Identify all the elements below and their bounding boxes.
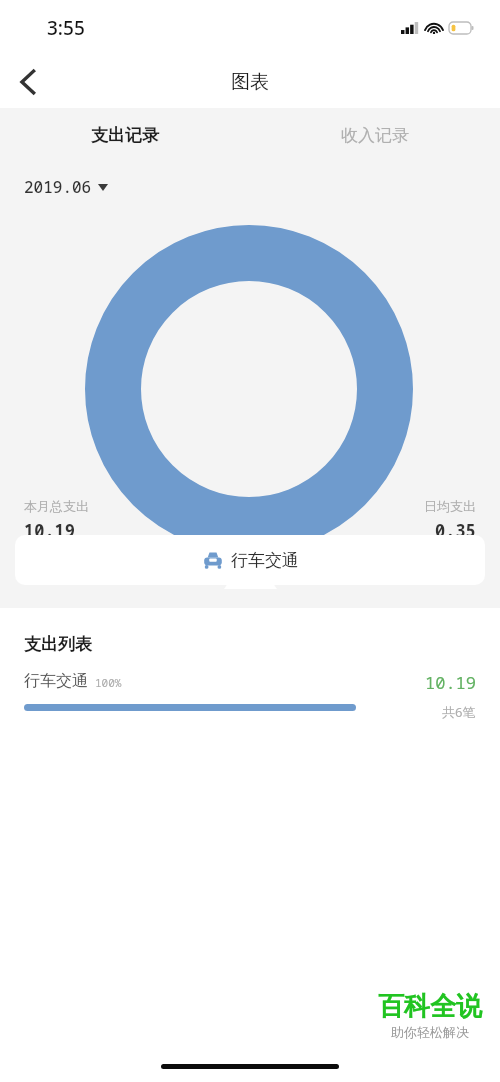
staticText: 收入记录 [341, 125, 409, 146]
staticText: 本月总支出 [24, 498, 89, 514]
staticText: 0.35 [435, 519, 476, 542]
staticText: 10.19 [425, 671, 476, 694]
staticText: 日均支出 [424, 498, 476, 514]
button[interactable]: 行车交通 [15, 535, 485, 585]
staticText: 100% [95, 675, 122, 690]
button[interactable]: 收入记录 [250, 108, 500, 162]
staticText: 行车交通 [24, 671, 88, 691]
button[interactable]: Back [0, 55, 56, 108]
staticText: 支出列表 [24, 634, 92, 655]
staticText: 百科全说 [378, 990, 482, 1023]
staticText: 行车交通 [231, 550, 299, 571]
button[interactable]: 支出记录 [0, 108, 250, 162]
staticText: 图表 [231, 70, 269, 94]
staticText: 支出记录 [91, 125, 159, 146]
staticText: 2019.06 [24, 176, 92, 198]
button[interactable]: 行车交通 [24, 671, 476, 721]
staticText: 共6笔 [442, 703, 476, 721]
staticText: 助你轻松解决 [391, 1024, 469, 1040]
staticText: 3:55 [47, 15, 85, 41]
button[interactable]: 2019.06 [24, 176, 108, 198]
staticText: 10.19 [24, 519, 75, 542]
